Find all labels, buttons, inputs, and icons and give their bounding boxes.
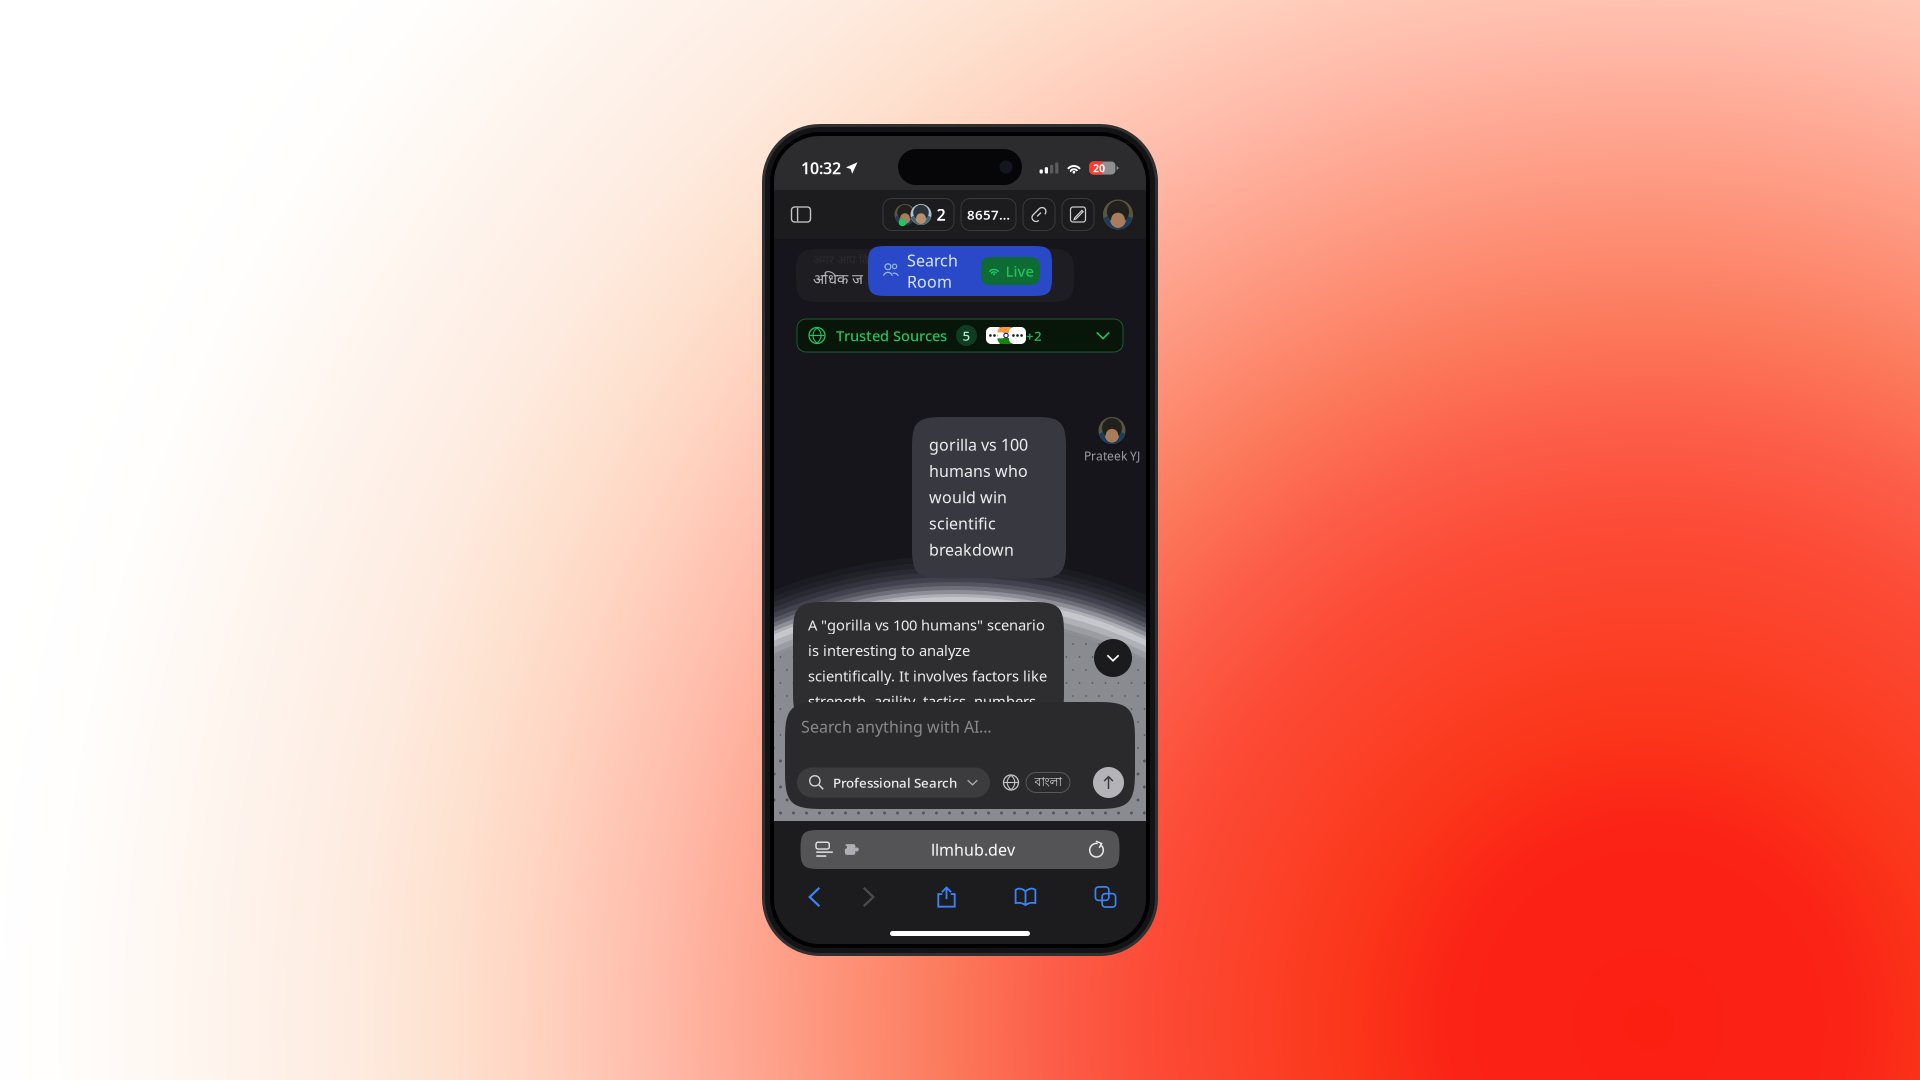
staticText: 2 (936, 204, 945, 225)
staticText: 20 (1093, 161, 1105, 175)
button[interactable]: Professional Search (797, 767, 990, 797)
button[interactable]: Copy link (1023, 198, 1055, 230)
button[interactable]: Extensions (842, 839, 860, 859)
button[interactable]: Language (1001, 771, 1021, 793)
button[interactable]: Send (1093, 767, 1124, 798)
staticText: বাংলা (1034, 774, 1061, 791)
staticText: Live (1005, 261, 1033, 281)
button[interactable]: Search Room (868, 246, 1052, 296)
staticText: 10:32 (801, 157, 841, 179)
button[interactable]: Bookmarks (998, 879, 1052, 915)
button[interactable]: Account (1103, 199, 1133, 229)
button[interactable]: 8657… (961, 198, 1016, 230)
staticText: 8657… (967, 206, 1010, 223)
button[interactable]: Share (919, 879, 973, 915)
staticText: Trusted Sources (836, 326, 947, 345)
button[interactable]: Tabs (1078, 879, 1132, 915)
staticText: Search Room (907, 250, 958, 292)
button[interactable]: Back (787, 879, 841, 915)
button[interactable]: Toggle sidebar (786, 199, 816, 229)
staticText: +2 (1026, 327, 1042, 344)
button[interactable]: বাংলা (1026, 772, 1070, 792)
staticText: Search anything with AI… (801, 716, 992, 737)
button[interactable]: Scroll to bottom (1094, 639, 1132, 677)
button[interactable]: 2 (883, 198, 954, 230)
staticText: Prateek YJ (1084, 448, 1140, 464)
staticText: 5 (962, 327, 970, 344)
staticText: gorilla vs 100 humans who would win scie… (929, 434, 1028, 560)
button[interactable]: New chat (1062, 198, 1094, 230)
button[interactable]: Trusted Sources (797, 319, 1123, 352)
button[interactable]: Page settings (813, 837, 835, 862)
staticText: अगर आप किसी खास विषय पर जानकारी (813, 252, 990, 268)
staticText: अधिक ज (813, 269, 863, 288)
staticText: A "gorilla vs 100 humans" scenario is in… (808, 615, 1047, 711)
button[interactable]: Forward (841, 879, 895, 915)
staticText: llmhub.dev (931, 839, 1015, 860)
button[interactable]: Reload (1085, 838, 1107, 860)
staticText: Professional Search (833, 774, 957, 791)
